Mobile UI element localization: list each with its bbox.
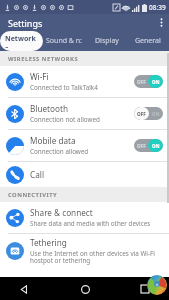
staticText: Share data and media with other devices xyxy=(30,219,151,228)
button[interactable]: Wi-Fi on xyxy=(134,75,163,88)
staticText: Settings xyxy=(8,17,43,29)
button[interactable]: Back xyxy=(14,279,34,299)
staticText: ON xyxy=(152,79,160,85)
staticText: Wi-Fi xyxy=(30,71,49,82)
staticText: Bluetooth xyxy=(30,103,68,114)
button[interactable]: Networks xyxy=(0,31,43,51)
staticText: ON xyxy=(152,143,160,149)
button[interactable]: Wi-Fi xyxy=(0,66,169,97)
staticText: Call xyxy=(30,169,44,180)
staticText: Sound & n: xyxy=(46,36,83,46)
staticText: Tethering xyxy=(30,237,67,248)
staticText: ON xyxy=(152,111,160,117)
button[interactable]: Tethering xyxy=(0,234,169,268)
button[interactable]: General xyxy=(127,31,169,51)
staticText: Networks xyxy=(5,34,38,48)
staticText: ON xyxy=(152,79,160,85)
staticText: OFF xyxy=(137,111,146,117)
button[interactable]: Recent apps xyxy=(135,279,155,299)
button[interactable]: Display xyxy=(86,31,127,51)
staticText: General xyxy=(135,36,161,46)
staticText: Use the Internet on other devices via Wi… xyxy=(30,249,165,265)
button[interactable]: Sound & n: xyxy=(43,31,86,51)
staticText: 08:39 xyxy=(149,3,166,12)
button[interactable]: Home xyxy=(75,279,95,299)
staticText: Connection allowed xyxy=(30,147,89,156)
button[interactable]: Bluetooth off xyxy=(134,107,163,120)
staticText: OFF xyxy=(137,111,146,117)
staticText: Share & connect xyxy=(30,207,93,218)
staticText: Connected to TalkTalk4 xyxy=(30,83,98,92)
staticText: WIRELESS NETWORKS xyxy=(8,55,79,63)
staticText: CONNECTIVITY xyxy=(8,191,58,199)
staticText: OFF xyxy=(137,79,146,85)
staticText: ON xyxy=(152,143,160,149)
button[interactable]: Share & connect xyxy=(0,202,169,233)
staticText: OFF xyxy=(137,143,146,149)
button[interactable]: Bluetooth xyxy=(0,98,169,129)
button[interactable]: Call xyxy=(0,162,169,187)
staticText: Mobile data xyxy=(30,135,76,146)
button[interactable]: More options xyxy=(153,14,169,31)
staticText: Display xyxy=(95,36,119,46)
button[interactable]: Mobile data xyxy=(0,130,169,161)
staticText: Connection not allowed xyxy=(30,115,100,124)
button[interactable]: Mobile data on xyxy=(134,139,163,152)
